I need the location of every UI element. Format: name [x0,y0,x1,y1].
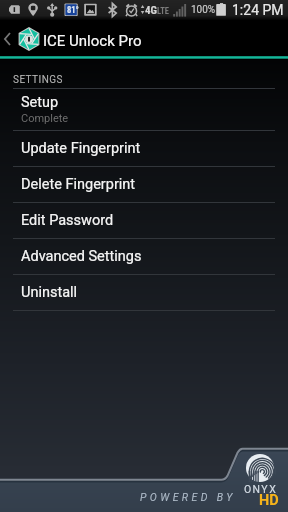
staticText: Update Fingerprint [21,140,141,157]
button[interactable]: Delete Fingerprint [0,166,288,202]
staticText: Delete Fingerprint [21,176,136,193]
staticText: SETTINGS [13,74,63,86]
staticText: POWERED BY [140,491,236,503]
staticText: 81° [67,5,79,15]
staticText: 4G [145,4,157,17]
button[interactable]: Update Fingerprint [0,130,288,166]
button[interactable]: Navigate up [0,20,15,60]
staticText: Uninstall [21,284,78,301]
staticText: Setup [21,94,59,111]
staticText: Advanced Settings [21,248,142,265]
staticText: ICE Unlock Pro [43,32,142,50]
staticText: 1:24 PM [232,2,284,18]
button[interactable]: Edit Password [0,202,288,238]
staticText: Complete [21,112,69,125]
button[interactable]: Uninstall [0,274,288,310]
staticText: ONYX [244,483,278,495]
staticText: 100% [191,4,216,16]
button[interactable]: Advanced Settings [0,238,288,274]
staticText: Edit Password [21,212,114,229]
staticText: LTE [157,6,169,16]
button[interactable]: Setup [0,88,288,130]
staticText: HD [259,492,279,509]
